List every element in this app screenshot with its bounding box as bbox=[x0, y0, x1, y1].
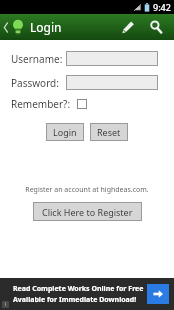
staticText: Register an account at highdeas.com. bbox=[0, 185, 174, 195]
button[interactable]: Login bbox=[46, 123, 84, 141]
button[interactable]: Remember me bbox=[77, 99, 87, 109]
button[interactable]: Compose bbox=[114, 14, 142, 40]
staticText: Login bbox=[30, 19, 62, 35]
button[interactable]: Reset bbox=[90, 123, 128, 141]
button[interactable]: Click Here to Register bbox=[33, 202, 142, 221]
button[interactable]: Login bbox=[0, 14, 68, 40]
button[interactable] bbox=[66, 75, 158, 90]
staticText: Password: bbox=[11, 76, 63, 90]
staticText: Available for Immediate Download! bbox=[13, 295, 137, 305]
button[interactable]: Search bbox=[142, 14, 170, 40]
staticText: Reset bbox=[97, 126, 121, 138]
staticText: Username: bbox=[11, 52, 63, 66]
button[interactable]: Read Complete Works Online for Free bbox=[0, 278, 174, 310]
staticText: Login bbox=[53, 126, 77, 138]
staticText: i bbox=[5, 301, 7, 308]
staticText: Click Here to Register bbox=[42, 206, 133, 218]
button[interactable] bbox=[66, 51, 158, 66]
staticText: Remember?: bbox=[11, 97, 71, 111]
staticText: Read Complete Works Online for Free bbox=[13, 284, 144, 294]
staticText: 9:42 bbox=[153, 1, 171, 13]
other: Ad info bbox=[2, 301, 9, 308]
button[interactable]: Open ad bbox=[147, 284, 169, 304]
